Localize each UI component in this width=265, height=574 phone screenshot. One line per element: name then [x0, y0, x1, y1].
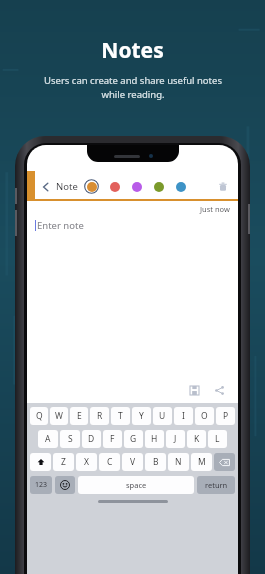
button[interactable]: R [90, 407, 109, 425]
staticText: G [130, 433, 137, 445]
button[interactable]: K [187, 430, 206, 448]
button[interactable]: J [166, 430, 185, 448]
staticText: T [118, 410, 123, 422]
staticText: 123 [35, 480, 48, 490]
button[interactable]: X [76, 453, 97, 471]
staticText: D [88, 433, 95, 445]
button[interactable]: U [153, 407, 172, 425]
staticText: N [175, 456, 182, 468]
staticText: return [205, 480, 228, 490]
staticText: X [84, 456, 89, 468]
button[interactable]: Note colour [175, 181, 187, 193]
button[interactable]: V [122, 453, 143, 471]
button[interactable]: Q [30, 407, 48, 425]
button[interactable]: Back [39, 180, 53, 194]
staticText: Notes [101, 36, 164, 65]
staticText: A [45, 433, 51, 445]
button[interactable]: Share note [212, 383, 226, 397]
button[interactable]: Y [132, 407, 151, 425]
staticText: F [110, 433, 115, 445]
button[interactable]: Delete note [216, 180, 230, 194]
staticText: Users can create and share useful notes … [44, 74, 222, 101]
staticText: C [107, 456, 113, 468]
button[interactable]: Key [197, 476, 235, 494]
button[interactable]: M [191, 453, 212, 471]
button[interactable]: W [50, 407, 68, 425]
staticText: O [201, 410, 208, 422]
button[interactable]: F [103, 430, 122, 448]
button[interactable]: P [216, 407, 235, 425]
button[interactable]: G [124, 430, 143, 448]
staticText: Q [36, 410, 43, 422]
staticText: H [151, 433, 158, 445]
button[interactable]: D [82, 430, 101, 448]
staticText: L [215, 433, 220, 445]
staticText: space [126, 480, 147, 490]
button[interactable]: Note [56, 180, 78, 193]
staticText: Enter note [37, 219, 84, 232]
staticText: K [194, 433, 200, 445]
button[interactable]: Note colour [109, 181, 121, 193]
button[interactable]: I [174, 407, 193, 425]
staticText: P [223, 410, 229, 422]
button[interactable]: space [78, 476, 194, 494]
staticText: Y [139, 410, 144, 422]
button[interactable]: Key [30, 453, 51, 471]
button[interactable]: Key [30, 476, 52, 494]
button[interactable]: A [38, 430, 58, 448]
staticText: Z [61, 456, 66, 468]
button[interactable]: C [99, 453, 120, 471]
button[interactable]: Note colour [84, 179, 99, 194]
staticText: U [159, 410, 166, 422]
staticText: M [198, 456, 206, 468]
staticText: I [182, 410, 185, 422]
button[interactable]: T [111, 407, 130, 425]
button[interactable]: Key [214, 453, 235, 471]
button[interactable]: S [60, 430, 80, 448]
button[interactable]: Save note [187, 383, 201, 397]
staticText: R [97, 410, 103, 422]
button[interactable]: Z [53, 453, 74, 471]
button[interactable]: H [145, 430, 164, 448]
button[interactable]: B [145, 453, 166, 471]
staticText: E [77, 410, 82, 422]
button[interactable]: Note colour [153, 181, 165, 193]
button[interactable]: E [70, 407, 88, 425]
staticText: S [68, 433, 73, 445]
staticText: Note [56, 180, 78, 193]
staticText: J [174, 433, 177, 445]
button[interactable]: O [195, 407, 214, 425]
staticText: W [55, 410, 63, 422]
button[interactable]: Note colour [131, 181, 143, 193]
staticText: Just now [200, 204, 230, 214]
staticText: V [130, 456, 136, 468]
staticText: B [153, 456, 159, 468]
button[interactable]: N [168, 453, 189, 471]
button[interactable]: Key [55, 476, 75, 494]
button[interactable]: L [208, 430, 227, 448]
